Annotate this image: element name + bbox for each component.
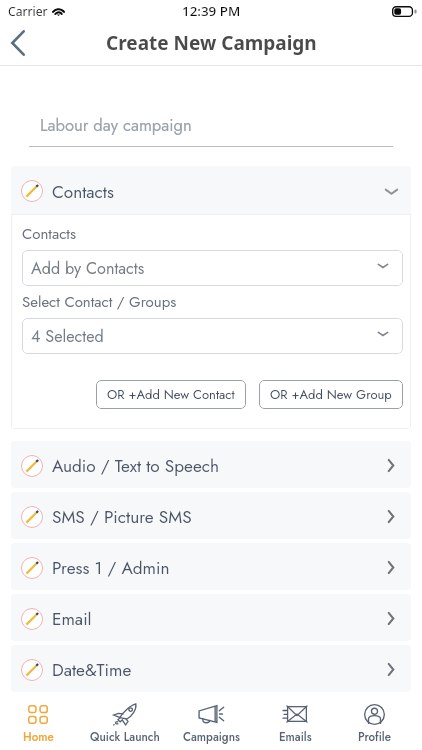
staticText: Press 1 / Admin [52,556,170,581]
button[interactable]: OR +Add New Contact [96,380,246,409]
button[interactable]: Emails [253,694,337,750]
staticText: Contacts [22,223,76,245]
button[interactable]: Email [11,594,411,641]
button[interactable]: Contacts [11,166,411,214]
staticText: Home [23,729,54,746]
button[interactable]: Campaigns [169,694,253,750]
staticText: OR +Add New Contact [107,385,235,404]
button[interactable]: Profile [332,694,416,750]
button[interactable]: Back [0,22,40,66]
staticText: Audio / Text to Speech [52,454,220,479]
staticText: 12:39 PM [182,2,241,20]
staticText: Add by Contacts [31,257,145,280]
staticText: Labour day campaign [40,113,192,137]
staticText: 4 Selected [31,325,104,348]
button[interactable]: OR +Add New Group [259,380,403,409]
button[interactable]: Press 1 / Admin [11,543,411,590]
staticText: OR +Add New Group [270,385,392,404]
staticText: Date&Time [52,658,132,683]
button[interactable]: Date&Time [11,645,411,692]
staticText: Email [52,607,92,632]
button[interactable]: Quick Launch [82,694,168,750]
button[interactable]: SMS / Picture SMS [11,492,411,539]
staticText: Emails [279,729,312,746]
staticText: Create New Campaign [106,30,317,56]
staticText: Contacts [52,180,114,205]
staticText: Profile [358,729,391,746]
staticText: Select Contact / Groups [22,291,177,313]
button[interactable]: 4 Selected [22,318,403,354]
button[interactable]: Audio / Text to Speech [11,441,411,488]
staticText: Carrier [8,3,48,20]
staticText: Quick Launch [90,729,160,746]
staticText: SMS / Picture SMS [52,505,192,530]
button[interactable]: Add by Contacts [22,250,403,286]
staticText: Campaigns [183,729,240,746]
button[interactable]: Home [0,694,80,750]
